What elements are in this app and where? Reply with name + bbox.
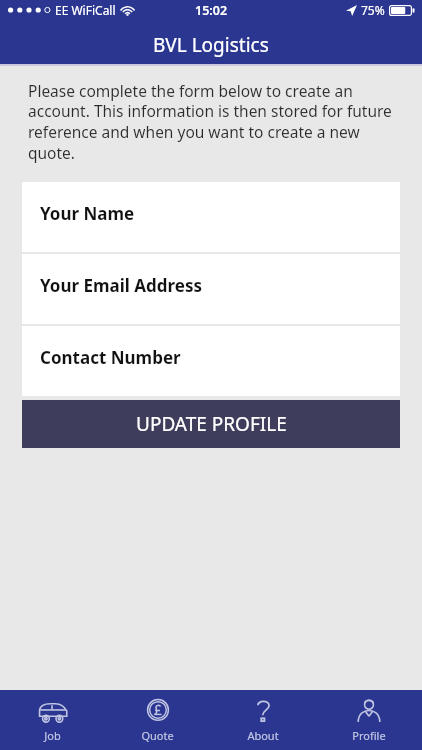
staticText: Profile <box>352 728 386 743</box>
staticText: Contact Number <box>40 346 181 369</box>
button[interactable]: Your Name <box>22 182 400 252</box>
staticText: 15:02 <box>195 2 228 19</box>
button[interactable]: About <box>210 690 316 750</box>
button[interactable]: Profile <box>316 690 422 750</box>
staticText: Your Email Address <box>40 274 203 297</box>
button[interactable]: Job <box>0 690 105 750</box>
staticText: Quote <box>141 728 174 743</box>
button[interactable]: Quote <box>105 690 210 750</box>
staticText: Please complete the form below to create… <box>28 80 398 164</box>
staticText: BVL Logistics <box>153 32 269 58</box>
staticText: EE WiFiCall <box>55 2 116 18</box>
staticText: Your Name <box>40 202 135 225</box>
staticText: 75% <box>361 2 385 18</box>
staticText: UPDATE PROFILE <box>136 411 287 437</box>
button[interactable]: Contact Number <box>22 326 400 396</box>
staticText: Job <box>44 728 61 743</box>
button[interactable]: UPDATE PROFILE <box>22 400 400 448</box>
button[interactable]: Your Email Address <box>22 254 400 324</box>
staticText: About <box>247 728 279 743</box>
